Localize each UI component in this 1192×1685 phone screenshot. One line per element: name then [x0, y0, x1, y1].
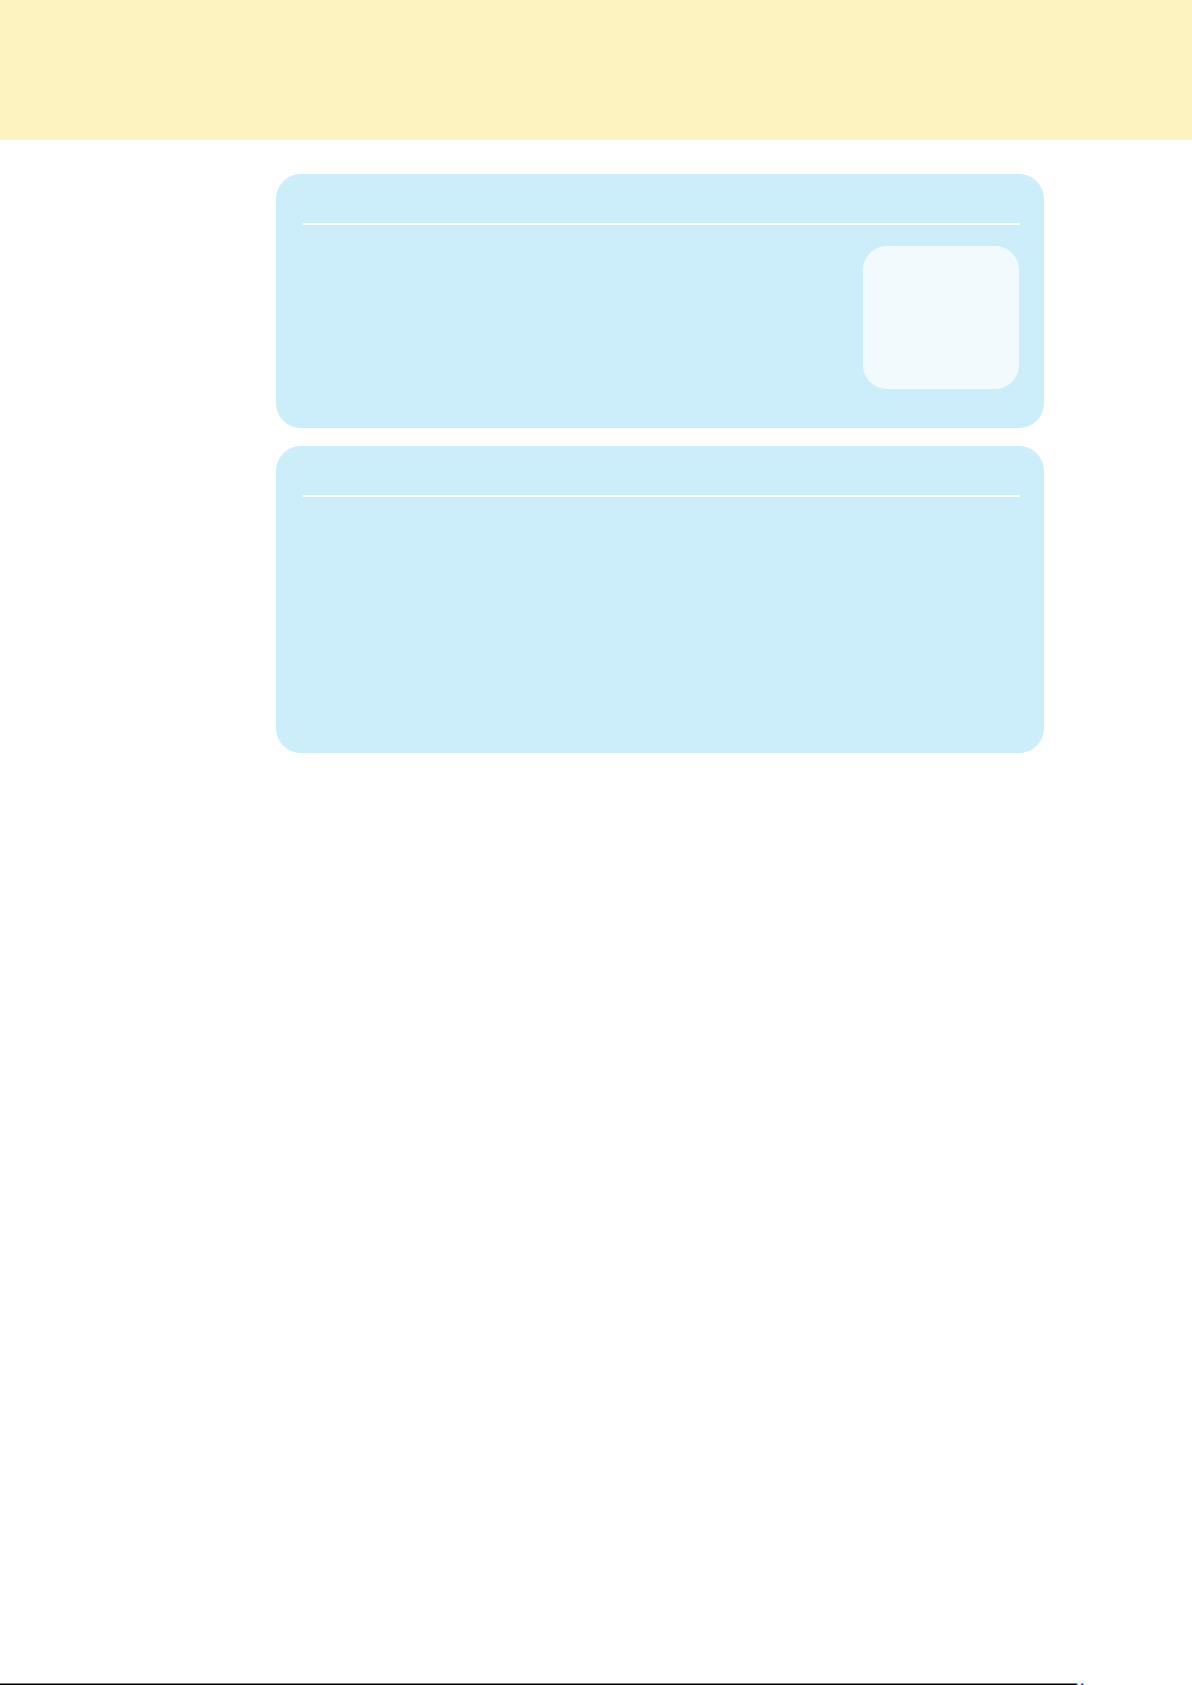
button[interactable]: Primary card — [276, 174, 1044, 428]
button[interactable]: Secondary card — [276, 446, 1044, 753]
